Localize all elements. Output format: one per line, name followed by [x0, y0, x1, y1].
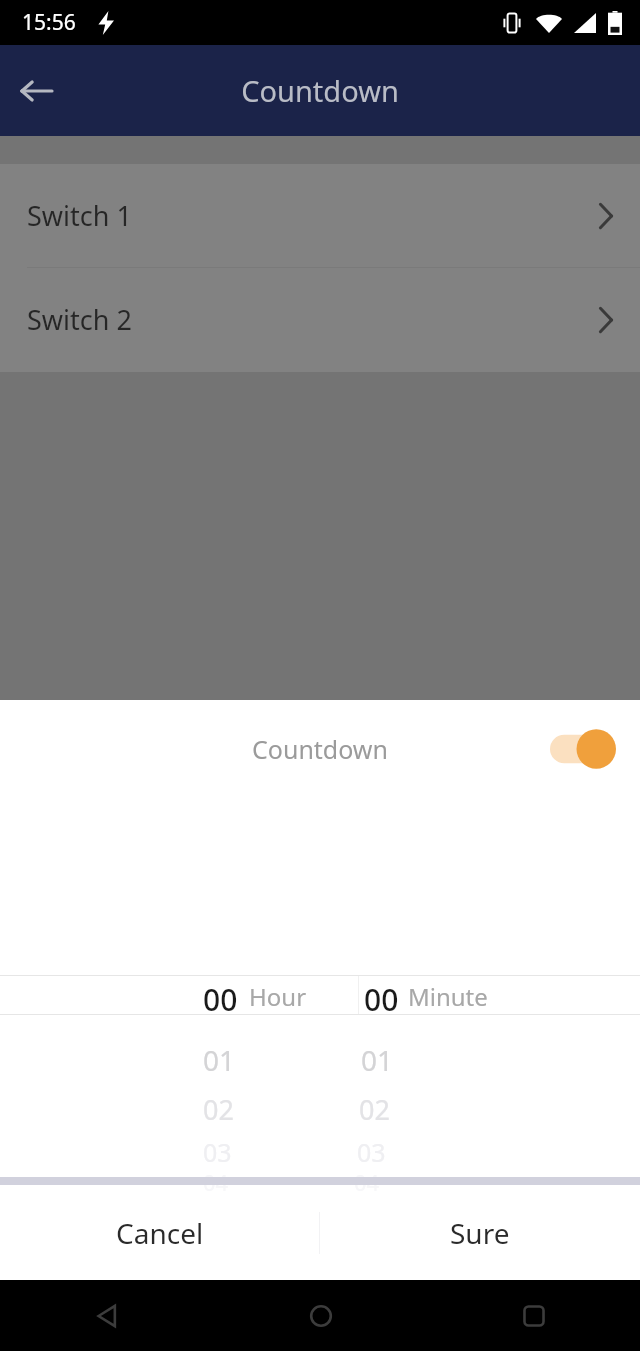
staticText: 04 [354, 1167, 380, 1197]
staticText: 01 [361, 1041, 394, 1079]
staticText: Switch 1 [27, 197, 132, 234]
staticText: 03 [357, 1135, 386, 1169]
staticText: Countdown [252, 732, 388, 766]
button[interactable]: Countdown toggle [548, 726, 618, 772]
staticText: Minute [408, 980, 488, 1013]
staticText: 01 [203, 1041, 236, 1079]
staticText: Countdown [241, 71, 399, 110]
staticText: Hour [249, 980, 307, 1013]
staticText: 03 [203, 1135, 232, 1169]
staticText: 02 [359, 1091, 390, 1128]
staticText: 02 [203, 1091, 234, 1128]
staticText: Sure [450, 1214, 510, 1252]
staticText: 15:56 [22, 8, 76, 37]
staticText: 04 [203, 1167, 229, 1197]
button[interactable]: Switch 2 [0, 268, 640, 371]
staticText: 00 [203, 979, 238, 1013]
staticText: 00 [364, 979, 399, 1013]
staticText: Cancel [116, 1214, 204, 1252]
button[interactable]: Back [0, 1280, 214, 1351]
button[interactable]: Cancel [0, 1185, 319, 1280]
button[interactable]: Recent apps [427, 1280, 640, 1351]
button[interactable]: Home [214, 1280, 427, 1351]
button[interactable]: Back [0, 55, 72, 127]
button[interactable]: Sure [320, 1185, 640, 1280]
button[interactable]: Switch 1 [0, 164, 640, 267]
staticText: Switch 2 [27, 301, 132, 338]
